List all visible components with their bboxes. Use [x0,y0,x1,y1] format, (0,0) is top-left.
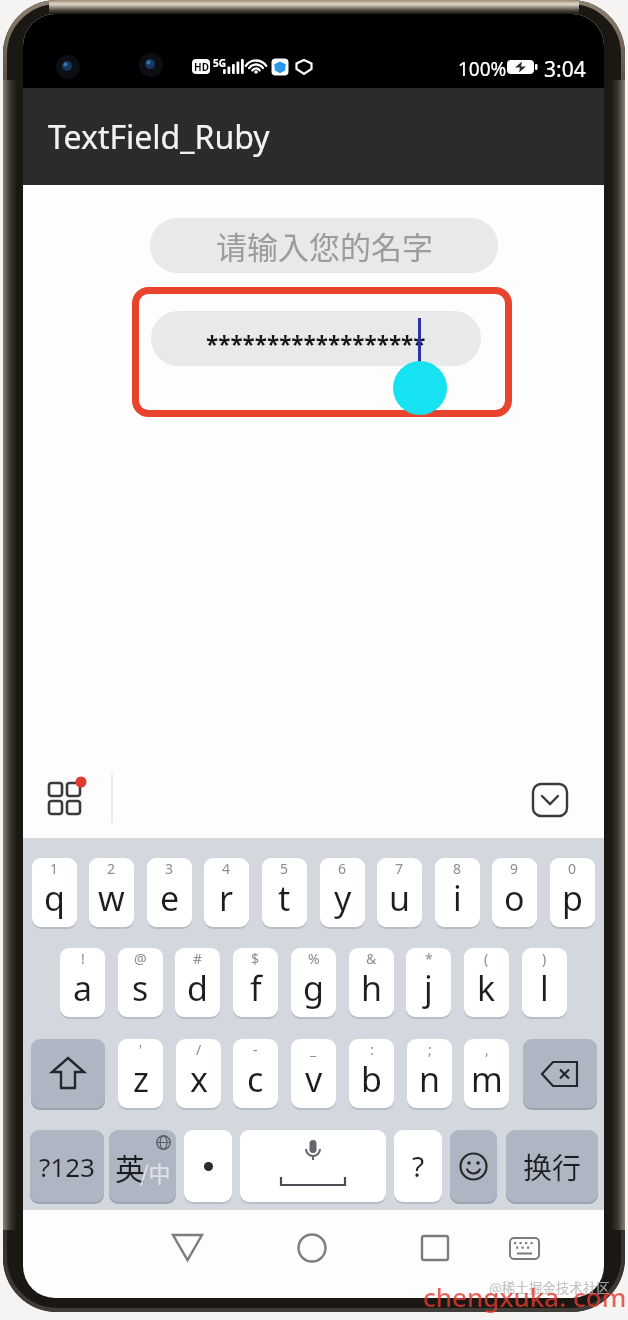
staticText: i [453,875,462,921]
staticText: 3:04 [544,55,586,84]
button[interactable]: 2 [89,858,134,927]
button[interactable]: 0 [550,858,595,927]
staticText: j [424,965,433,1011]
staticText: m [471,1056,503,1102]
staticText: - [253,1040,258,1059]
staticText: 5G [213,56,226,70]
staticText: : [370,1040,374,1059]
button[interactable]: 6 [320,858,365,927]
button[interactable] [287,1226,337,1272]
staticText: z [133,1056,149,1102]
button[interactable]: TextField_Ruby [23,88,604,185]
button[interactable] [393,361,447,415]
staticText: ) [542,949,547,968]
staticText: l [540,965,549,1011]
button[interactable]: 换行 [506,1130,598,1202]
staticText: x [190,1056,208,1102]
button[interactable] [523,1039,597,1108]
button[interactable]: _ [291,1039,336,1108]
staticText: $ [251,949,260,968]
staticText: b [361,1056,382,1102]
button[interactable] [184,1130,232,1202]
staticText: y [334,875,352,921]
button[interactable]: - [233,1039,278,1108]
staticText: v [305,1056,323,1102]
staticText: 2 [107,859,116,878]
staticText: @稀土掘金技术社区 [489,1277,610,1297]
button[interactable] [411,1226,461,1272]
staticText: g [303,965,324,1011]
button[interactable] [31,1039,105,1108]
button[interactable]: ' [118,1039,163,1108]
staticText: 9 [510,859,519,878]
staticText: * [425,949,433,968]
button[interactable]: ; [407,1039,452,1108]
staticText: 4 [222,859,231,878]
button[interactable]: / [176,1039,221,1108]
button[interactable]: $ [233,948,278,1017]
button[interactable]: 3 [147,858,192,927]
staticText: / [196,1040,202,1059]
button[interactable]: ( [464,948,509,1017]
button[interactable] [450,1130,497,1202]
staticText: 3 [165,859,174,878]
staticText: 请输入您的名字 [216,223,433,268]
button[interactable]: ) [522,948,567,1017]
button[interactable] [41,772,91,822]
button[interactable]: 请输入您的名字 [150,218,498,273]
button[interactable]: & [349,948,394,1017]
staticText: e [160,875,180,921]
button[interactable]: ! [60,948,105,1017]
button[interactable]: ****************** [151,311,481,366]
staticText: q [44,875,65,921]
staticText: p [562,875,583,921]
staticText: 7 [395,859,404,878]
staticText: s [132,965,149,1011]
button[interactable]: @ [118,948,163,1017]
staticText: ? [412,1147,425,1185]
staticText: 换行 [523,1145,582,1187]
staticText: ; [428,1040,432,1059]
staticText: h [361,965,383,1011]
button[interactable]: : [349,1039,394,1108]
staticText: ****************** [206,329,426,360]
staticText: TextField_Ruby [48,115,270,159]
button[interactable]: 7 [377,858,422,927]
staticText: c [247,1056,264,1102]
button[interactable]: ? [394,1130,442,1202]
staticText: 8 [453,859,462,878]
staticText: ' [139,1040,143,1059]
staticText: o [504,875,525,921]
button[interactable]: ?123 [30,1130,104,1202]
button[interactable]: , [464,1039,509,1108]
staticText: 0 [568,859,577,878]
button[interactable] [501,1226,551,1272]
button[interactable]: * [406,948,451,1017]
staticText: % [308,949,320,968]
staticText: u [389,875,411,921]
staticText: 英 [115,1145,145,1188]
button[interactable] [525,774,575,820]
button[interactable] [240,1130,386,1202]
button[interactable]: 9 [492,858,537,927]
staticText: t [278,875,291,921]
staticText: @ [134,949,147,968]
staticText: ( [484,949,489,968]
staticText: ?123 [39,1149,95,1184]
button[interactable]: 英 [109,1130,176,1202]
staticText: , [485,1040,489,1059]
button[interactable]: 5 [262,858,307,927]
button[interactable]: % [291,948,336,1017]
button[interactable] [163,1226,213,1272]
staticText: 1 [50,859,59,878]
button[interactable]: # [175,948,220,1017]
button[interactable]: 8 [435,858,480,927]
button[interactable]: 4 [204,858,249,927]
staticText: & [366,949,377,968]
staticText: _ [310,1040,317,1059]
staticText: 5 [280,859,289,878]
button[interactable]: 1 [32,858,77,927]
staticText: r [219,875,234,921]
staticText: k [477,965,496,1011]
staticText: chengxuka. com [423,1279,627,1314]
